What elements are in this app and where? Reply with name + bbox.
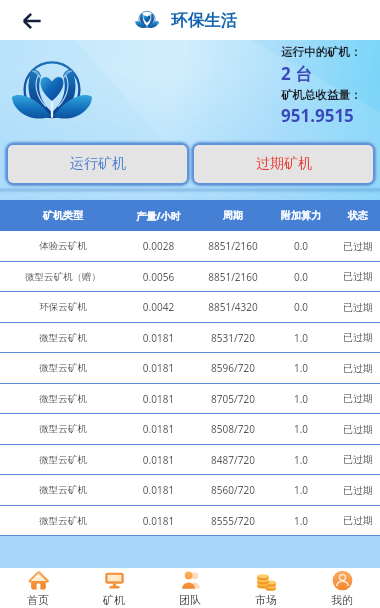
button[interactable]: 微型云矿机（赠） (0, 262, 380, 291)
button[interactable]: 微型云矿机 (0, 445, 380, 474)
staticText: 体验云矿机 (0, 240, 126, 252)
staticText: 1.0 (275, 361, 327, 375)
staticText: 8596/720 (191, 361, 275, 375)
button[interactable]: Back (14, 3, 49, 38)
staticText: 0.0181 (126, 422, 191, 436)
staticText: 矿机总收益量： (281, 88, 362, 102)
staticText: 0.0 (275, 270, 327, 284)
button[interactable]: 微型云矿机 (0, 475, 380, 505)
staticText: 矿机 (103, 593, 125, 607)
staticText: 8487/720 (191, 453, 275, 467)
staticText: 已过期 (336, 301, 380, 314)
staticText: 已过期 (336, 331, 380, 344)
staticText: 951.9515 (281, 104, 354, 127)
staticText: 环保云矿机 (0, 301, 126, 313)
button[interactable]: 团队 (152, 568, 228, 608)
staticText: 1.0 (275, 422, 327, 436)
staticText: 团队 (179, 593, 201, 607)
button[interactable]: 体验云矿机 (0, 231, 380, 261)
staticText: 0.0 (275, 239, 327, 253)
staticText: 2 台 (281, 62, 313, 85)
staticText: 0.0181 (126, 514, 191, 528)
staticText: 微型云矿机（赠） (0, 271, 126, 283)
staticText: 已过期 (336, 362, 380, 375)
staticText: 首页 (27, 593, 49, 607)
button[interactable]: 微型云矿机 (0, 323, 380, 352)
staticText: 环保生活 (171, 10, 237, 31)
button[interactable]: 运行矿机 (3, 140, 192, 188)
button[interactable]: 微型云矿机 (0, 384, 380, 413)
staticText: 0.0028 (126, 239, 191, 253)
button[interactable]: 首页 (0, 568, 76, 608)
staticText: 8508/720 (191, 422, 275, 436)
button[interactable]: 矿机 (76, 568, 152, 608)
staticText: 市场 (255, 593, 277, 607)
staticText: 1.0 (275, 331, 327, 345)
staticText: 运行矿机 (70, 155, 126, 173)
staticText: 已过期 (336, 240, 380, 253)
staticText: 8560/720 (191, 483, 275, 497)
staticText: 已过期 (336, 514, 380, 527)
staticText: 运行中的矿机： (281, 45, 362, 59)
staticText: 微型云矿机 (0, 332, 126, 344)
button[interactable]: 过期矿机 (189, 140, 378, 188)
staticText: 0.0181 (126, 453, 191, 467)
staticText: 0.0042 (126, 300, 191, 314)
staticText: 我的 (331, 593, 353, 607)
staticText: 微型云矿机 (0, 484, 126, 496)
staticText: 状态 (336, 209, 380, 222)
staticText: 8555/720 (191, 514, 275, 528)
staticText: 产量/小时 (126, 209, 191, 223)
staticText: 0.0181 (126, 392, 191, 406)
staticText: 微型云矿机 (0, 454, 126, 466)
staticText: 1.0 (275, 483, 327, 497)
button[interactable]: 微型云矿机 (0, 506, 380, 535)
button[interactable]: 微型云矿机 (0, 414, 380, 444)
staticText: 已过期 (336, 270, 380, 283)
staticText: 已过期 (336, 392, 380, 405)
staticText: 8851/2160 (191, 239, 275, 253)
staticText: 1.0 (275, 514, 327, 528)
staticText: 周期 (191, 209, 275, 222)
staticText: 1.0 (275, 392, 327, 406)
staticText: 已过期 (336, 453, 380, 466)
button[interactable]: 环保云矿机 (0, 292, 380, 322)
staticText: 0.0 (275, 300, 327, 314)
button[interactable]: 市场 (228, 568, 304, 608)
staticText: 微型云矿机 (0, 423, 126, 435)
staticText: 8705/720 (191, 392, 275, 406)
staticText: 已过期 (336, 484, 380, 497)
staticText: 0.0181 (126, 331, 191, 345)
button[interactable]: 我的 (304, 568, 380, 608)
staticText: 8851/4320 (191, 300, 275, 314)
staticText: 微型云矿机 (0, 515, 126, 527)
staticText: 矿机类型 (0, 209, 126, 222)
staticText: 0.0181 (126, 483, 191, 497)
staticText: 已过期 (336, 423, 380, 436)
staticText: 微型云矿机 (0, 393, 126, 405)
button[interactable]: 微型云矿机 (0, 353, 380, 383)
staticText: 微型云矿机 (0, 362, 126, 374)
staticText: 8531/720 (191, 331, 275, 345)
staticText: 0.0056 (126, 270, 191, 284)
staticText: 0.0181 (126, 361, 191, 375)
staticText: 过期矿机 (256, 155, 312, 173)
staticText: 附加算力 (275, 209, 327, 222)
staticText: 8851/2160 (191, 270, 275, 284)
staticText: 1.0 (275, 453, 327, 467)
